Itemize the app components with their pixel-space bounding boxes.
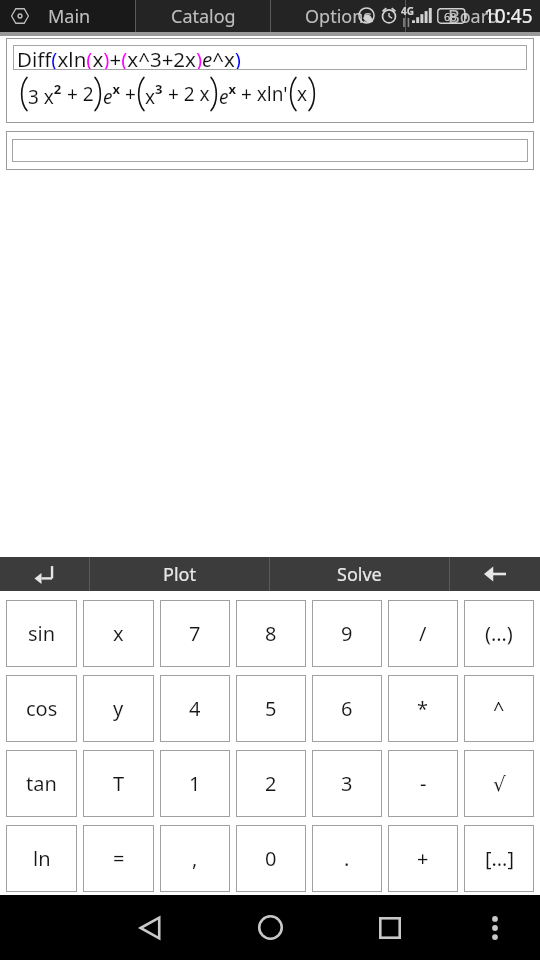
button[interactable]: Backspace: [450, 557, 540, 591]
button[interactable]: 8: [236, 600, 306, 667]
button[interactable]: =: [83, 825, 154, 892]
staticText: ex: [219, 80, 236, 109]
button[interactable]: 1: [160, 750, 230, 817]
button[interactable]: ^: [464, 675, 534, 742]
staticText: (…): [485, 620, 513, 647]
button[interactable]: y: [83, 675, 154, 742]
staticText: 6: [341, 695, 353, 722]
button[interactable]: 2: [236, 750, 306, 817]
staticText: ex: [103, 80, 120, 109]
staticText: Diff(xln(x)+(x^3+2x)e^x): [17, 45, 242, 70]
button[interactable]: -: [388, 750, 458, 817]
staticText: 3: [341, 770, 353, 797]
staticText: 5: [265, 695, 277, 722]
staticText: 1: [189, 770, 201, 797]
staticText: + 2 x: [163, 81, 210, 107]
staticText: tan: [26, 770, 57, 797]
staticText: 68: [444, 9, 457, 24]
button[interactable]: 9: [312, 600, 382, 667]
staticText: /: [419, 620, 427, 647]
button[interactable]: /: [388, 600, 458, 667]
button[interactable]: 4: [160, 675, 230, 742]
staticText: x: [297, 81, 308, 107]
button[interactable]: ln: [6, 825, 77, 892]
button[interactable]: x: [83, 600, 154, 667]
staticText: -: [420, 770, 427, 797]
button[interactable]: Back: [110, 895, 190, 960]
button[interactable]: sin: [6, 600, 77, 667]
staticText: + xln': [236, 81, 288, 107]
staticText: ,: [192, 845, 198, 872]
staticText: .: [344, 845, 350, 872]
button[interactable]: More options: [455, 895, 535, 960]
staticText: x: [113, 620, 124, 647]
staticText: Main: [48, 4, 91, 29]
button[interactable]: Catalog: [136, 0, 270, 32]
button[interactable]: cos: [6, 675, 77, 742]
staticText: […]: [485, 845, 514, 872]
button[interactable]: tan: [6, 750, 77, 817]
staticText: x3: [145, 80, 163, 109]
button[interactable]: Enter: [0, 557, 89, 591]
button[interactable]: Options: [271, 0, 405, 32]
staticText: Catalog: [171, 4, 236, 29]
staticText: Board: [448, 4, 499, 29]
staticText: +: [417, 845, 429, 872]
button[interactable]: Board: [406, 0, 540, 32]
staticText: y: [113, 695, 124, 722]
staticText: Solve: [337, 562, 382, 587]
staticText: +: [120, 81, 136, 107]
button[interactable]: […]: [464, 825, 534, 892]
staticText: ^: [493, 695, 505, 722]
button[interactable]: Recents: [350, 895, 430, 960]
button[interactable]: .: [312, 825, 382, 892]
staticText: 3 x2: [28, 80, 62, 109]
button[interactable]: 6: [312, 675, 382, 742]
button[interactable]: Expression input: [12, 139, 528, 162]
staticText: 7: [189, 620, 201, 647]
button[interactable]: √: [464, 750, 534, 817]
staticText: 0: [265, 845, 277, 872]
button[interactable]: T: [83, 750, 154, 817]
button[interactable]: (…): [464, 600, 534, 667]
button[interactable]: 0: [236, 825, 306, 892]
staticText: Options: [305, 4, 372, 29]
staticText: √: [493, 772, 506, 795]
staticText: *: [417, 695, 429, 722]
staticText: 10:45: [484, 3, 533, 29]
button[interactable]: Diff(xln(x)+(x^3+2x)e^x): [13, 45, 527, 70]
button[interactable]: Home: [230, 895, 310, 960]
staticText: T: [113, 770, 125, 797]
staticText: sin: [28, 620, 56, 647]
staticText: cos: [26, 695, 58, 722]
staticText: ln: [33, 845, 51, 872]
button[interactable]: 5: [236, 675, 306, 742]
button[interactable]: 3: [312, 750, 382, 817]
button[interactable]: Main: [0, 0, 135, 32]
staticText: 2: [265, 770, 277, 797]
button[interactable]: 7: [160, 600, 230, 667]
other: Main: [10, 6, 30, 26]
staticText: Plot: [163, 562, 196, 587]
staticText: 4: [189, 695, 201, 722]
button[interactable]: ,: [160, 825, 230, 892]
button[interactable]: *: [388, 675, 458, 742]
staticText: 8: [265, 620, 277, 647]
staticText: + 2: [62, 81, 94, 107]
staticText: 9: [341, 620, 353, 647]
staticText: 4G: [401, 4, 414, 18]
staticText: =: [113, 845, 125, 872]
button[interactable]: Plot: [90, 557, 269, 591]
button[interactable]: Solve: [270, 557, 449, 591]
button[interactable]: +: [388, 825, 458, 892]
